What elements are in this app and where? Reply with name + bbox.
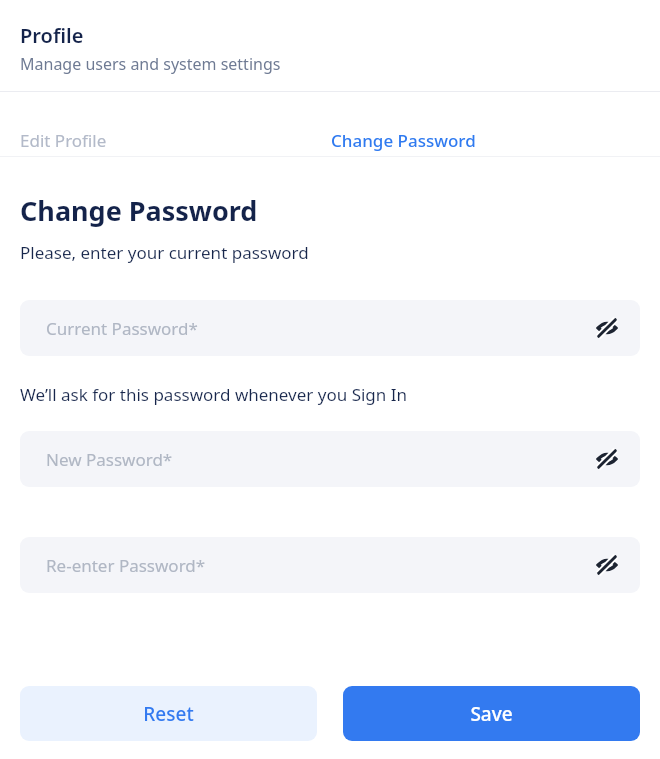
staticText: Edit Profile — [20, 129, 107, 152]
staticText: Save — [470, 701, 513, 727]
staticText: Please, enter your current password — [20, 241, 309, 264]
button[interactable]: Show password — [592, 313, 622, 343]
button[interactable]: Save — [343, 686, 640, 741]
staticText: Current Password* — [46, 317, 198, 340]
staticText: Change Password — [331, 129, 476, 152]
button[interactable]: Change Password — [147, 92, 660, 157]
staticText: Reset — [143, 701, 194, 727]
button[interactable]: Current Password* — [20, 300, 640, 356]
button[interactable]: Show password — [592, 550, 622, 580]
staticText: We’ll ask for this password whenever you… — [20, 383, 408, 406]
button[interactable]: Show password — [592, 444, 622, 474]
staticText: New Password* — [46, 448, 173, 471]
button[interactable]: New Password* — [20, 431, 640, 487]
staticText: Manage users and system settings — [20, 53, 281, 75]
staticText: Profile — [20, 22, 84, 49]
button[interactable]: Re-enter Password* — [20, 537, 640, 593]
staticText: Change Password — [20, 192, 258, 229]
button[interactable]: Edit Profile — [20, 92, 107, 157]
button[interactable]: Reset — [20, 686, 317, 741]
staticText: Re-enter Password* — [46, 554, 206, 577]
